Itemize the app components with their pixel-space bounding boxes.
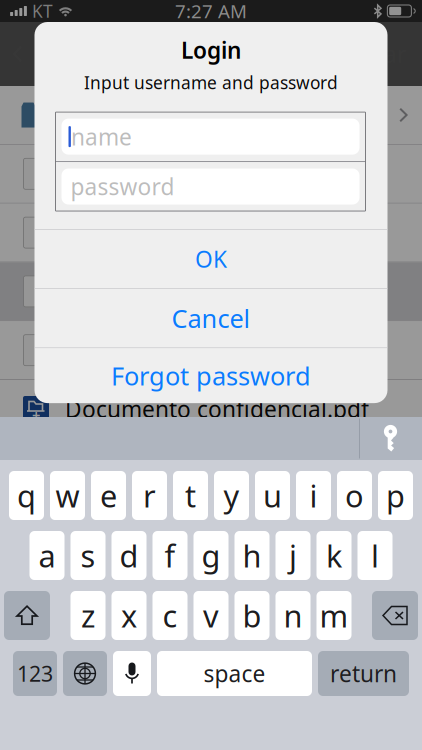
staticText: 7:27 AM [175, 0, 247, 23]
staticText: t [185, 475, 196, 516]
button[interactable]: k [316, 531, 351, 580]
button[interactable]: Next keyboard [63, 651, 107, 696]
staticText: Cancel [171, 301, 250, 335]
staticText: y [223, 475, 239, 516]
button[interactable]: u [255, 471, 290, 520]
staticText: KT [32, 0, 53, 22]
staticText: o [345, 475, 364, 516]
button[interactable]: + [0, 380, 422, 438]
button[interactable]: d [111, 531, 146, 580]
button[interactable]: space [157, 651, 312, 696]
staticText: OK [195, 244, 227, 274]
staticText: Login [181, 35, 241, 65]
staticText: u [263, 475, 282, 516]
staticText: s [80, 535, 95, 576]
staticText: w [55, 475, 79, 516]
staticText: x [121, 595, 137, 636]
button[interactable]: g [193, 531, 228, 580]
button[interactable]: Dictate [113, 651, 151, 696]
staticText: Editar [343, 39, 406, 69]
staticText: Informe anual.pdf [65, 335, 260, 365]
button[interactable]: Cancel [34, 289, 387, 347]
button[interactable]: Forgot password [34, 348, 387, 403]
staticText: Input username and password [84, 71, 338, 94]
button[interactable]: o [337, 471, 372, 520]
button[interactable]: v [193, 591, 228, 640]
staticText: l [371, 535, 379, 576]
staticText: c [162, 595, 177, 636]
staticText: + [32, 405, 40, 425]
staticText: Contrato firmado.pdf [65, 159, 292, 189]
button[interactable]: Shift [4, 591, 50, 640]
button[interactable]: w [50, 471, 85, 520]
button[interactable]: b [234, 591, 269, 640]
staticText: Forgot password [111, 359, 311, 392]
button[interactable]: Contrato firmado.pdf [0, 145, 422, 203]
staticText: m [319, 595, 348, 636]
button[interactable]: e [91, 471, 126, 520]
staticText: return [330, 658, 397, 688]
button[interactable]: r [132, 471, 167, 520]
button[interactable]: Passwords [360, 417, 422, 460]
staticText: d [119, 535, 138, 576]
button[interactable]: 123 [13, 651, 57, 696]
button[interactable]: x [111, 591, 146, 640]
button[interactable]: c [152, 591, 187, 640]
button[interactable]: p [378, 471, 413, 520]
button[interactable]: s [70, 531, 105, 580]
button[interactable]: Editar [343, 22, 422, 86]
button[interactable]: Recibo de compra.pdf [0, 262, 422, 320]
button[interactable]: return [318, 651, 409, 696]
staticText: q [17, 475, 36, 516]
button[interactable]: name [55, 112, 365, 161]
button[interactable]: y [214, 471, 249, 520]
staticText: j [289, 535, 297, 576]
button[interactable]: Factura 2019.pdf [0, 204, 422, 262]
staticText: p [386, 475, 405, 516]
button[interactable]: i [296, 471, 331, 520]
staticText: z [81, 595, 95, 636]
staticText: Documento confidencial.pdf [65, 394, 369, 424]
staticText: name [71, 122, 132, 152]
staticText: e [100, 475, 117, 516]
staticText: space [203, 658, 265, 688]
button[interactable]: j [275, 531, 310, 580]
button[interactable]: l [357, 531, 392, 580]
button[interactable]: OK [34, 230, 387, 288]
staticText: a [38, 535, 55, 576]
button[interactable]: Delete [372, 591, 418, 640]
button[interactable]: f [152, 531, 187, 580]
staticText: v [203, 595, 219, 636]
staticText: n [283, 595, 302, 636]
staticText: password [70, 171, 174, 202]
button[interactable]: m [316, 591, 351, 640]
staticText: h [242, 535, 261, 576]
staticText: Documentos [65, 100, 202, 130]
staticText: b [242, 595, 261, 636]
button[interactable]: a [29, 531, 64, 580]
staticText: i [309, 475, 317, 516]
button[interactable]: Documentos [0, 86, 422, 144]
staticText: Factura 2019.pdf [65, 217, 245, 248]
button[interactable]: z [70, 591, 105, 640]
button[interactable]: t [173, 471, 208, 520]
button[interactable]: h [234, 531, 269, 580]
button[interactable]: password [55, 162, 365, 211]
button[interactable]: Informe anual.pdf [0, 321, 422, 379]
button[interactable]: n [275, 591, 310, 640]
staticText: k [326, 535, 342, 576]
staticText: f [164, 535, 175, 576]
staticText: 123 [17, 659, 53, 688]
button[interactable]: q [9, 471, 44, 520]
staticText: r [143, 475, 156, 516]
staticText: Recibo de compra.pdf [65, 276, 300, 306]
staticText: g [201, 535, 220, 576]
